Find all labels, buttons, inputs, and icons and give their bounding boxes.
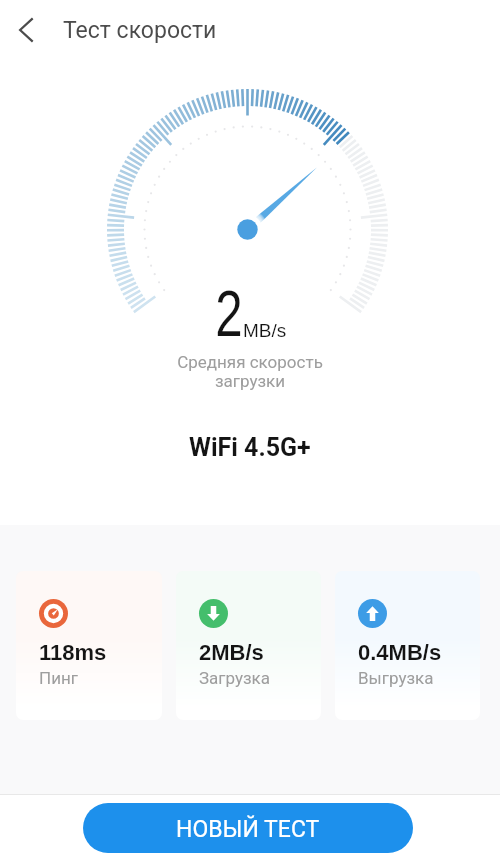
staticText: 2MB/s	[199, 640, 264, 665]
staticText: Средняя скорость загрузки	[177, 352, 323, 391]
button[interactable]: Back	[2, 6, 50, 54]
staticText: 2	[215, 278, 243, 350]
staticText: 118ms	[39, 640, 107, 665]
staticText: Выгрузка	[358, 668, 434, 688]
staticText: 0.4MB/s	[358, 640, 442, 665]
staticText: Пинг	[39, 668, 78, 688]
staticText: Тест скорости	[63, 17, 217, 44]
staticText: WiFi 4.5G+	[189, 433, 311, 462]
staticText: MB/s	[243, 320, 287, 341]
staticText: НОВЫЙ ТЕСТ	[176, 816, 320, 843]
button[interactable]: НОВЫЙ ТЕСТ	[83, 803, 413, 853]
button[interactable]: 2MB/s	[176, 571, 321, 720]
button[interactable]: 0.4MB/s	[335, 571, 480, 720]
button[interactable]: 118ms	[16, 571, 162, 720]
staticText: Загрузка	[199, 668, 271, 688]
